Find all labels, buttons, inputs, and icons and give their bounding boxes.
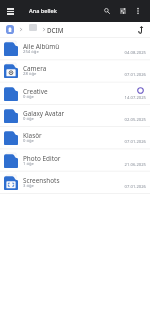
button[interactable]: Navigation drawer	[3, 0, 17, 22]
button[interactable]: Aile Albümü	[0, 37, 150, 59]
staticText: Ana bellek	[29, 7, 57, 15]
button[interactable]: Photo Editor	[0, 149, 150, 171]
staticText: Screenshots	[23, 176, 60, 185]
staticText: 254 öğe	[23, 49, 39, 55]
staticText: 07.01.2026	[124, 72, 146, 78]
button[interactable]: Camera	[0, 59, 150, 81]
button[interactable]: Search	[100, 0, 114, 22]
staticText: 3 öğe	[23, 183, 34, 189]
staticText: 0 öğe	[23, 94, 34, 100]
button[interactable]: Screenshots	[0, 171, 150, 193]
staticText: Photo Editor	[23, 154, 61, 163]
staticText: 21.06.2025	[124, 162, 146, 168]
button[interactable]: Home	[6, 25, 14, 34]
button[interactable]: Filter and sort	[116, 0, 130, 22]
button[interactable]: Sort order	[133, 22, 147, 37]
staticText: 0 öğe	[23, 138, 34, 144]
staticText: 14.07.2025	[124, 95, 146, 101]
button[interactable]: Klasör	[0, 126, 150, 148]
button[interactable]: Galaxy Avatar	[0, 104, 150, 126]
button[interactable]: More options	[131, 0, 145, 22]
staticText: 07.01.2026	[124, 184, 146, 190]
staticText: 07.01.2026	[124, 139, 146, 145]
staticText: 28 öğe	[23, 71, 37, 77]
staticText: 1 öğe	[23, 161, 34, 167]
staticText: Aile Albümü	[23, 42, 60, 51]
staticText: 0 öğe	[23, 116, 34, 122]
button[interactable]: Internal storage	[29, 24, 37, 31]
staticText: Galaxy Avatar	[23, 109, 65, 118]
staticText: 04.08.2025	[124, 50, 146, 56]
staticText: Camera	[23, 64, 47, 73]
staticText: Creative	[23, 87, 48, 96]
staticText: Klasör	[23, 131, 42, 140]
staticText: 02.05.2025	[124, 117, 146, 123]
button[interactable]: Creative	[0, 82, 150, 104]
staticText: DCIM	[47, 26, 64, 34]
